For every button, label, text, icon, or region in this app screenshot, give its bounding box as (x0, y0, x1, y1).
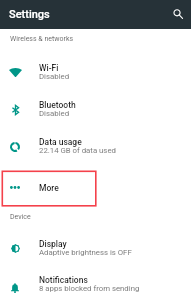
button[interactable]: Wi-Fi (0, 54, 191, 91)
staticText: Disabled (39, 109, 70, 118)
staticText: Data usage (39, 137, 82, 147)
staticText: Display (39, 239, 67, 249)
staticText: More (39, 183, 59, 193)
button[interactable]: Bluetooth (0, 91, 191, 128)
staticText: Disabled (39, 72, 70, 81)
staticText: 8 apps blocked from sending (39, 284, 140, 293)
staticText: Adaptive brightness is OFF (39, 248, 132, 257)
staticText: Notifications (39, 275, 88, 285)
staticText: Settings (9, 8, 50, 21)
staticText: 22.14 GB of data used (39, 146, 116, 155)
staticText: Wi-Fi (39, 63, 59, 73)
staticText: Wireless & networks (10, 35, 74, 43)
button[interactable]: More (0, 169, 191, 206)
button[interactable]: Display (0, 230, 191, 267)
staticText: Device (10, 213, 31, 221)
button[interactable]: Data usage (0, 128, 191, 165)
staticText: Bluetooth (39, 100, 76, 110)
button[interactable]: Search (169, 6, 187, 24)
button[interactable]: Notifications (0, 266, 191, 300)
